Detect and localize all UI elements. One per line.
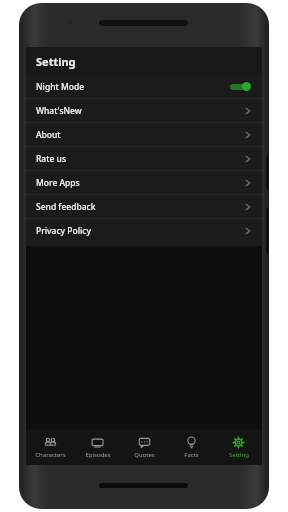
button[interactable]: Privacy Policy xyxy=(26,219,262,242)
staticText: Setting xyxy=(229,451,249,459)
staticText: Episodes xyxy=(85,451,111,459)
staticText: Facts xyxy=(184,451,199,459)
button[interactable]: Characters xyxy=(26,429,74,465)
button[interactable]: About xyxy=(26,123,262,146)
staticText: Send feedback xyxy=(36,201,244,213)
staticText: Privacy Policy xyxy=(36,225,244,237)
staticText: Characters xyxy=(35,451,66,459)
button[interactable]: Facts xyxy=(168,429,215,465)
button[interactable]: Rate us xyxy=(26,147,262,170)
button[interactable]: Setting xyxy=(215,429,262,465)
staticText: Setting xyxy=(36,54,76,69)
button[interactable]: Night Mode xyxy=(26,75,262,98)
staticText: About xyxy=(36,129,244,141)
button[interactable]: Episodes xyxy=(74,429,121,465)
button[interactable]: Send feedback xyxy=(26,195,262,218)
staticText: Rate us xyxy=(36,153,244,165)
button[interactable]: Quotes xyxy=(121,429,168,465)
staticText: More Apps xyxy=(36,177,244,189)
staticText: Quotes xyxy=(134,451,155,459)
staticText: What'sNew xyxy=(36,105,244,117)
button[interactable]: More Apps xyxy=(26,171,262,194)
staticText: Night Mode xyxy=(36,81,230,93)
button[interactable]: What'sNew xyxy=(26,99,262,122)
